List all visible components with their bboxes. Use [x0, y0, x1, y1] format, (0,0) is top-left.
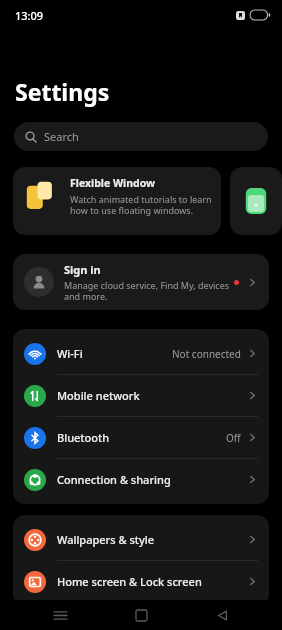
staticText: Wallpapers & style — [57, 532, 247, 547]
staticText: Search — [44, 129, 79, 144]
button[interactable]: Bluetooth — [13, 417, 269, 458]
staticText: Flexible Window — [70, 176, 156, 190]
staticText: Connection & sharing — [57, 472, 247, 487]
staticText: Not connected — [172, 347, 241, 361]
staticText: Off — [226, 431, 241, 445]
button[interactable]: Wallpapers & style — [13, 519, 269, 560]
button[interactable]: Back — [201, 600, 243, 630]
staticText: Home screen & Lock screen — [57, 574, 247, 589]
button[interactable]: Flexible Window — [13, 167, 221, 235]
staticText: Mobile network — [57, 388, 247, 403]
staticText: Manage cloud service, Find My, devices a… — [64, 279, 234, 303]
button[interactable] — [230, 167, 282, 235]
button[interactable]: Wi-Fi — [13, 333, 269, 374]
staticText: 13:09 — [15, 8, 44, 23]
button[interactable]: Mobile network — [13, 375, 269, 416]
staticText: Bluetooth — [57, 430, 226, 445]
button[interactable]: Home screen & Lock screen — [13, 561, 269, 602]
button[interactable]: Recents — [39, 600, 81, 630]
button[interactable]: Home — [120, 600, 162, 630]
button[interactable]: Sign in — [13, 254, 269, 310]
staticText: Watch animated tutorials to learn how to… — [70, 193, 221, 217]
button[interactable]: Search — [14, 122, 268, 151]
staticText: Wi-Fi — [57, 346, 172, 361]
staticText: Settings — [15, 76, 110, 107]
staticText: Sign in — [64, 262, 101, 277]
button[interactable]: Connection & sharing — [13, 459, 269, 500]
